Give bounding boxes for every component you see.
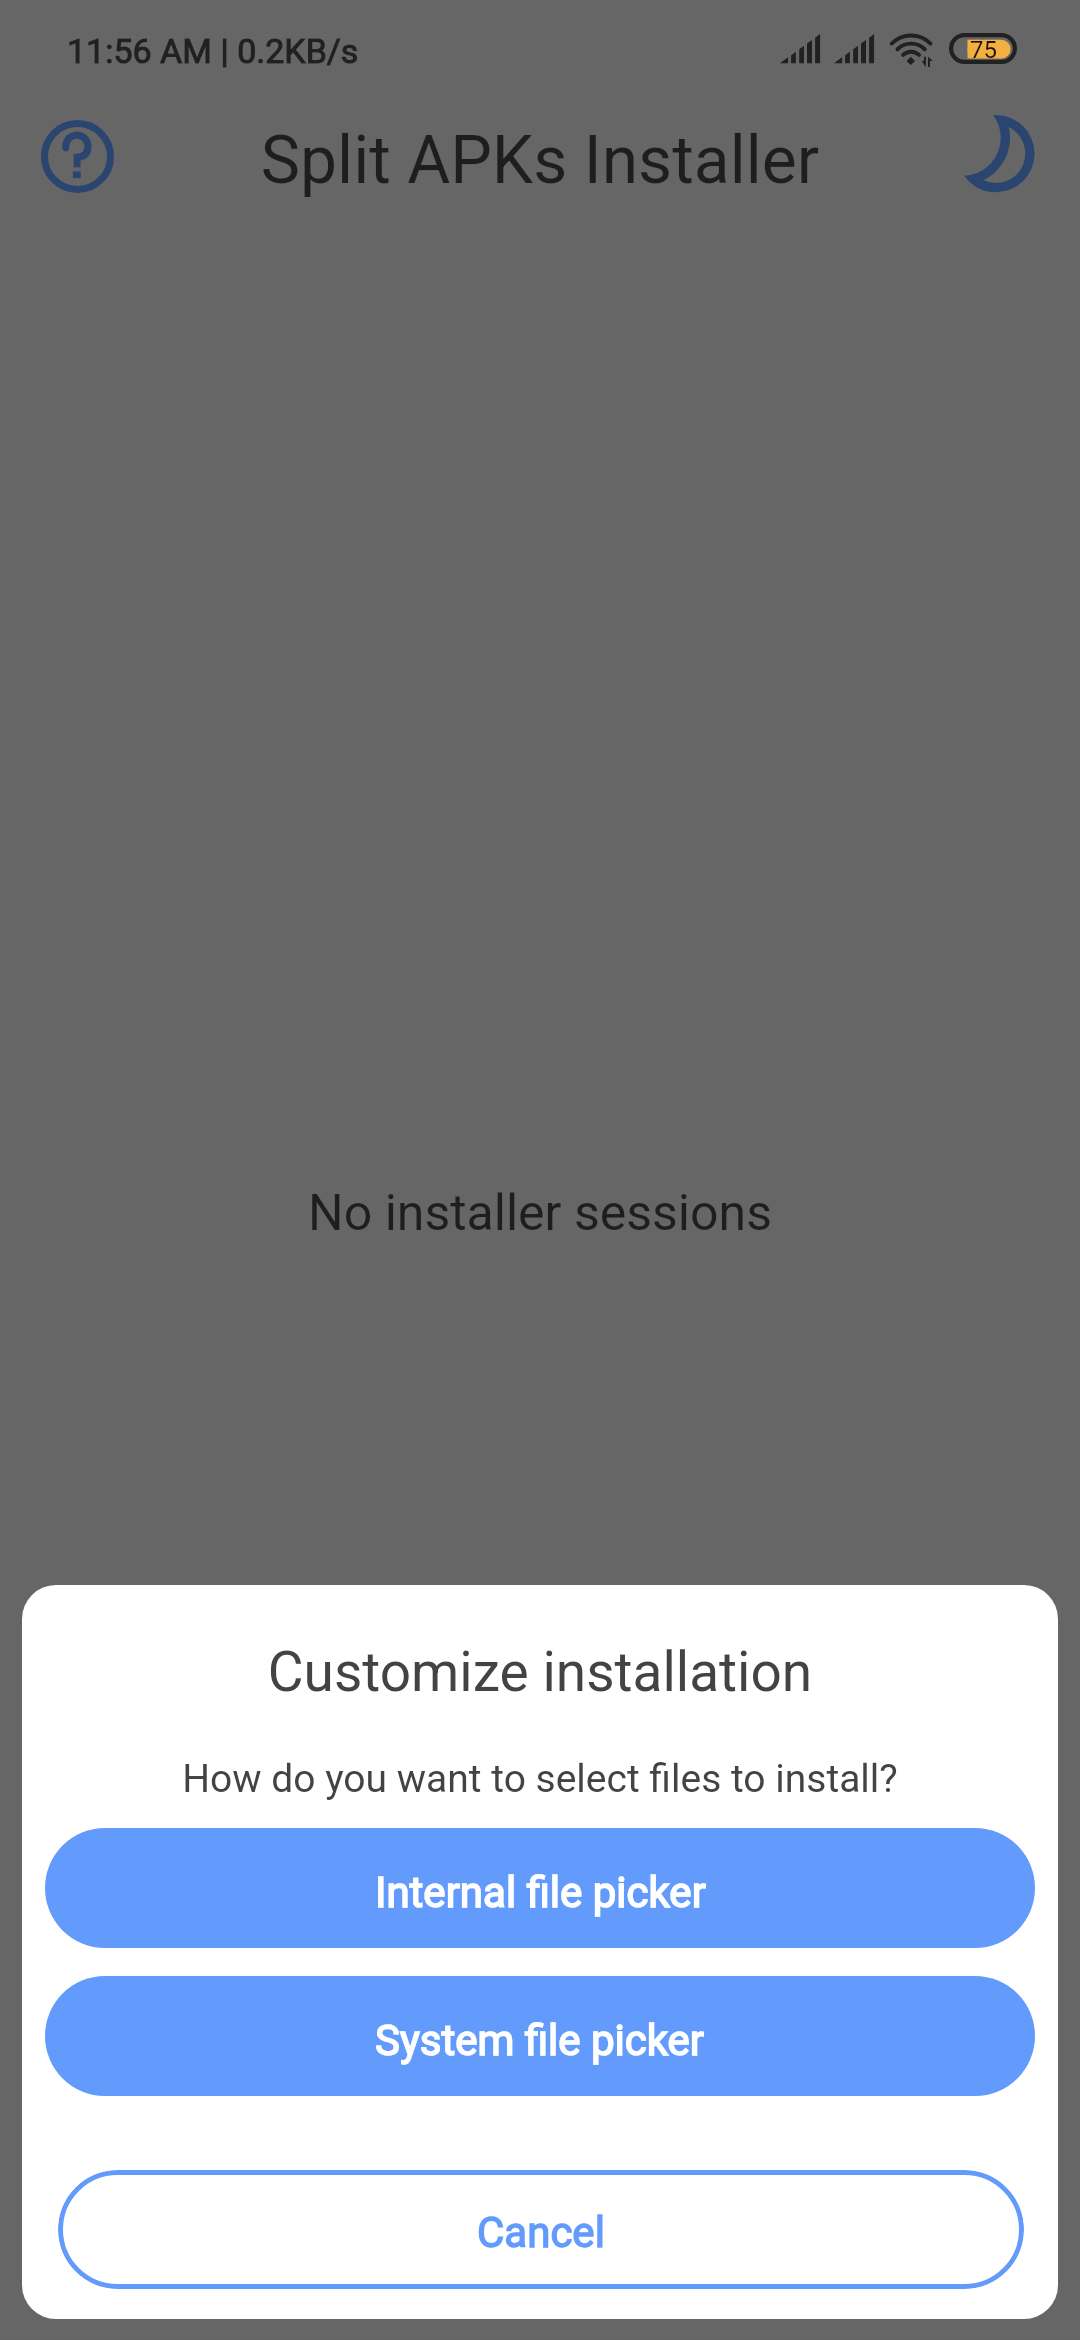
staticText: System file picker [375,2016,705,2065]
staticText: How do you want to select files to insta… [22,1756,1058,1802]
staticText: 11:56 AM | 0.2KB/s [67,31,359,71]
button[interactable]: Internal file picker [45,1828,1035,1948]
button[interactable]: System file picker [45,1976,1035,2096]
button[interactable]: Toggle night mode [948,101,1052,205]
button[interactable]: Help [25,104,129,208]
staticText: 75 [970,36,997,64]
staticText: No installer sessions [0,1184,1080,1243]
staticText: Internal file picker [375,1868,706,1917]
button[interactable]: Cancel [58,2170,1024,2289]
staticText: Customize installation [22,1640,1058,1704]
staticText: Split APKs Installer [0,122,1080,199]
staticText: Cancel [477,2208,605,2257]
